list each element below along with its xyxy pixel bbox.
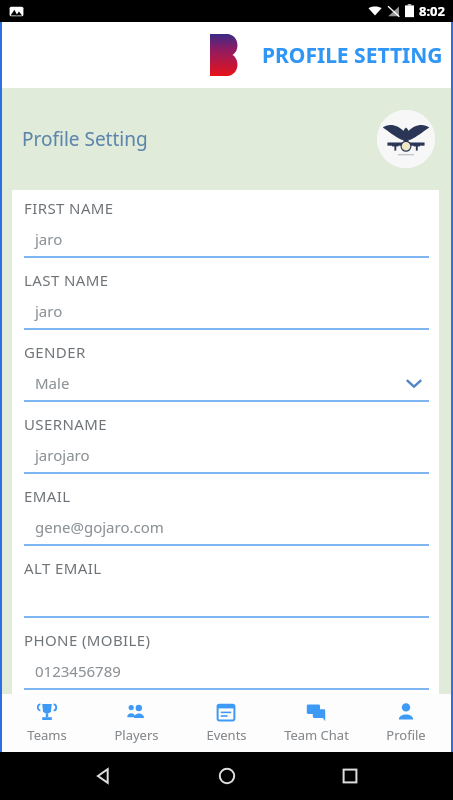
staticText: LAST NAME <box>24 270 109 290</box>
button[interactable]: ALT EMAIL <box>12 558 439 630</box>
staticText: Profile <box>386 726 426 744</box>
staticText: Team Chat <box>284 726 349 744</box>
staticText: FIRST NAME <box>24 198 114 218</box>
staticText: 8:02 <box>419 2 445 20</box>
staticText: gene@gojaro.com <box>35 517 164 537</box>
staticText: Male <box>35 373 70 393</box>
button[interactable]: Teams <box>2 694 91 752</box>
button[interactable]: EMAIL <box>12 486 439 558</box>
button[interactable]: USERNAME <box>12 414 439 486</box>
staticText: ALT EMAIL <box>24 558 102 578</box>
button[interactable]: Profile photo <box>377 110 435 168</box>
staticText: Teams <box>27 726 67 744</box>
staticText: EMAIL <box>24 486 71 506</box>
button[interactable]: Home <box>206 755 248 797</box>
staticText: GENDER <box>24 342 86 362</box>
staticText: USERNAME <box>24 414 108 434</box>
staticText: Events <box>206 726 247 744</box>
staticText: PHONE (MOBILE) <box>24 630 151 650</box>
button[interactable]: LAST NAME <box>12 270 439 342</box>
button[interactable]: GENDER <box>12 342 439 414</box>
button[interactable]: Players <box>91 694 181 752</box>
staticText: jaro <box>35 301 63 321</box>
staticText: PROFILE SETTING <box>262 41 443 70</box>
button[interactable]: Profile <box>361 694 451 752</box>
button[interactable]: Back <box>82 755 124 797</box>
staticText: 0123456789 <box>35 661 121 681</box>
button[interactable]: Events <box>181 694 271 752</box>
button[interactable]: FIRST NAME <box>12 198 439 270</box>
staticText: Profile Setting <box>22 126 148 152</box>
staticText: jaro <box>35 229 63 249</box>
other: Open gender list <box>405 374 423 392</box>
button[interactable]: Recent apps <box>329 755 371 797</box>
staticText: Players <box>114 726 159 744</box>
button[interactable]: Team Chat <box>271 694 361 752</box>
button[interactable]: PHONE (MOBILE) <box>12 630 439 694</box>
staticText: jarojaro <box>35 445 90 465</box>
